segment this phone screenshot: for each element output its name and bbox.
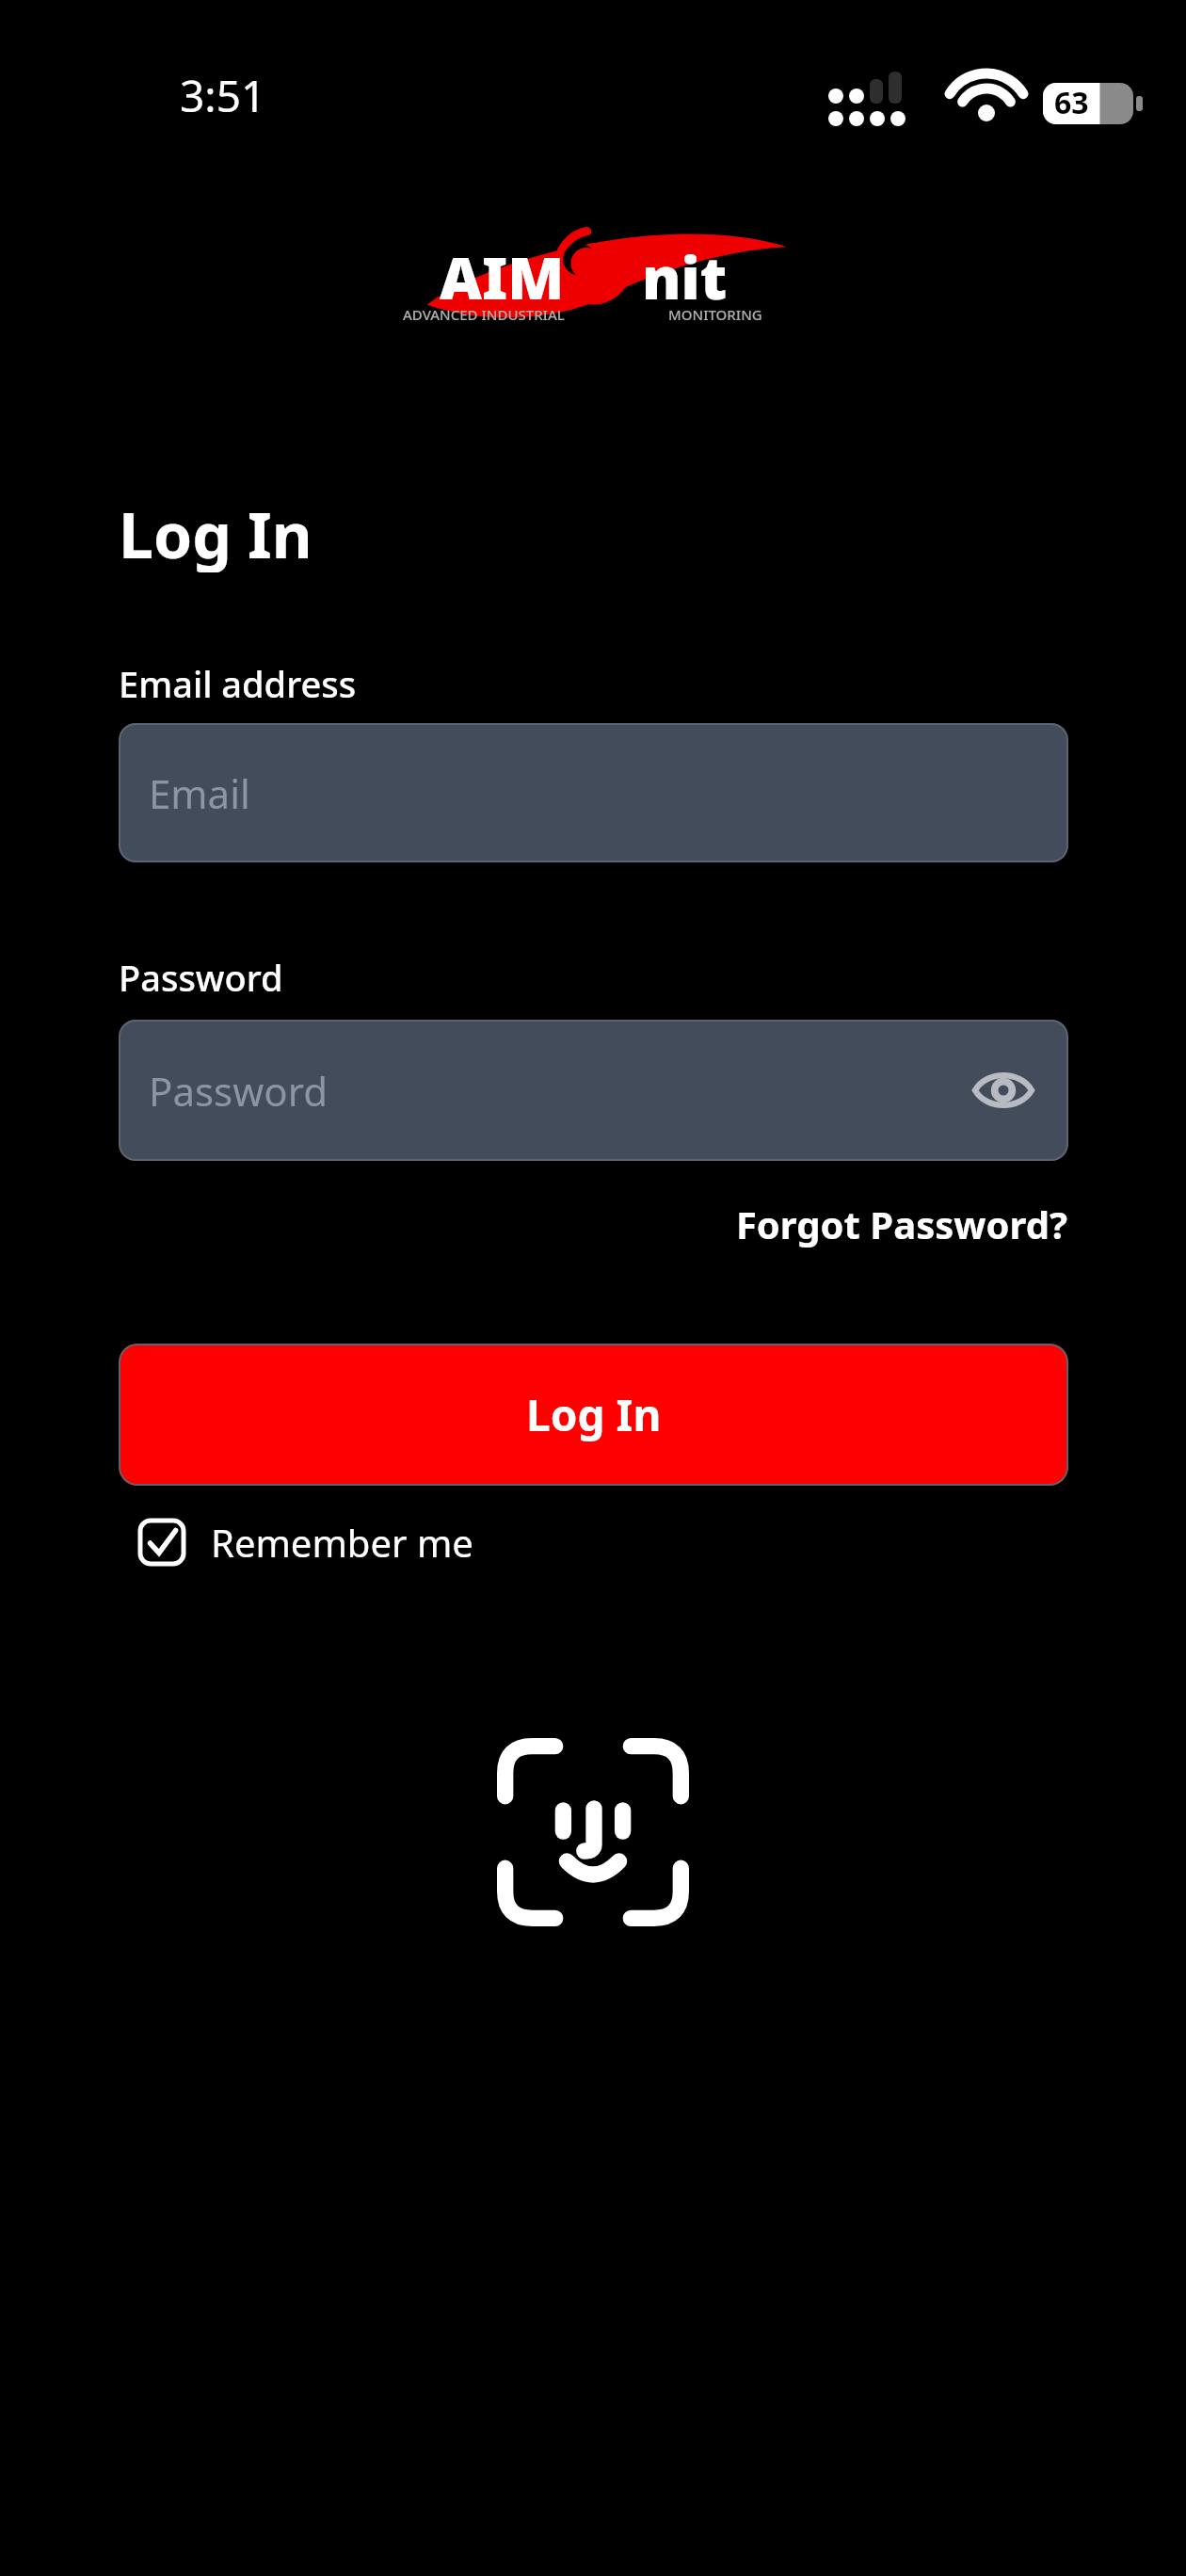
staticText: MONITORING	[668, 305, 762, 324]
button[interactable]: Email	[119, 723, 1068, 862]
staticText: Email address	[119, 659, 357, 708]
staticText: Log In	[119, 491, 313, 572]
staticText: AIM	[440, 237, 565, 303]
button[interactable]: Password	[119, 1020, 1068, 1161]
button[interactable]: Sign in with Face ID	[497, 1738, 689, 1926]
staticText: Email	[149, 766, 250, 820]
staticText: Password	[149, 1064, 328, 1118]
button[interactable]: Show password	[963, 1050, 1044, 1131]
staticText: nit	[642, 237, 728, 303]
button[interactable]: Forgot Password?	[735, 1199, 1067, 1249]
button[interactable]: Remember me	[137, 1506, 473, 1578]
staticText: 3:51	[180, 66, 266, 124]
staticText: 63	[1054, 82, 1089, 123]
staticText: ADVANCED INDUSTRIAL	[403, 305, 565, 324]
staticText: Remember me	[211, 1517, 473, 1568]
staticText: Log In	[526, 1385, 662, 1444]
staticText: Password	[119, 953, 283, 1002]
button[interactable]: Log In	[119, 1344, 1068, 1486]
staticText: Forgot Password?	[735, 1199, 1067, 1249]
